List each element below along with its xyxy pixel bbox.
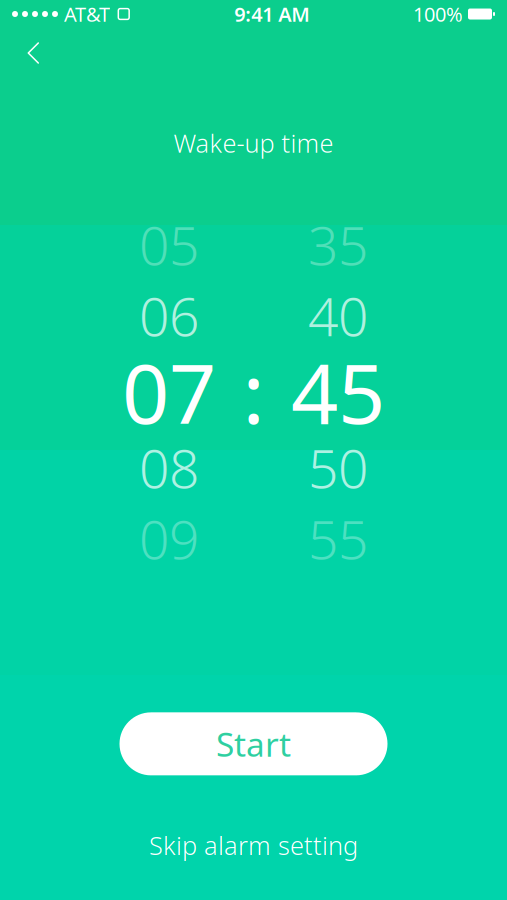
button[interactable]: Start [119,712,387,775]
staticText: 100% [413,1,463,27]
staticText: 50 [308,432,368,503]
staticText: Wake-up time [173,126,333,160]
staticText: : [242,337,264,447]
staticText: 35 [308,209,368,280]
staticText: 55 [308,503,368,574]
staticText: 05 [139,209,199,280]
staticText: 40 [308,280,368,351]
staticText: Start [216,722,291,766]
staticText: 07 [122,337,216,447]
button[interactable]: Skip alarm setting [0,820,507,870]
staticText: 09 [139,503,199,574]
staticText: AT&T [64,1,110,27]
button[interactable]: Back [6,28,62,78]
staticText: 06 [139,280,199,351]
staticText: 9:41 AM [234,1,310,27]
staticText: 45 [291,337,385,447]
staticText: 08 [139,432,199,503]
staticText: Skip alarm setting [149,828,358,862]
